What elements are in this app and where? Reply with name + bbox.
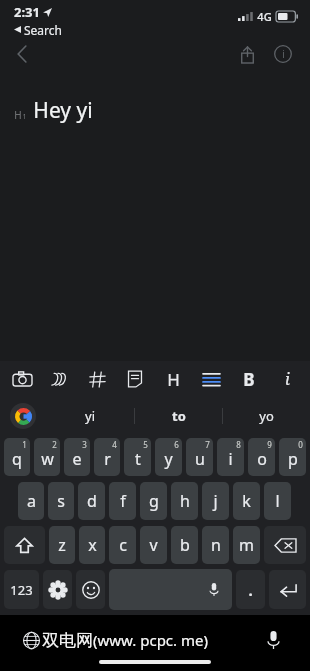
button[interactable]: List [192,361,230,397]
button[interactable]: Info [266,37,300,71]
staticText: i [228,448,233,470]
staticText: 123 [10,581,33,599]
button[interactable]: Period [236,570,265,609]
button[interactable]: Bold [230,361,268,397]
button[interactable]: Space [109,569,232,610]
staticText: 4G [257,9,272,24]
staticText: x [88,534,97,556]
staticText: 9 [267,439,272,450]
button[interactable]: d [78,482,105,520]
staticText: f [120,490,126,512]
button[interactable]: Shift [4,526,45,564]
staticText: u [195,448,205,470]
staticText: 2:31 [14,3,40,21]
staticText: h [180,490,190,512]
staticText: i [282,47,285,61]
button[interactable]: Settings [43,570,72,609]
button[interactable]: w [34,438,60,476]
button[interactable]: l [264,482,291,520]
button[interactable]: m [233,526,260,564]
button[interactable]: p [279,438,306,476]
staticText: yi [85,407,95,425]
staticText: a [27,490,36,512]
button[interactable]: Voice input [260,627,286,653]
staticText: z [58,534,66,556]
staticText: w [41,448,54,470]
staticText: s [57,490,65,512]
button[interactable]: c [109,526,136,564]
staticText: . [248,580,253,600]
staticText: Search [24,22,62,36]
staticText: B [243,368,255,391]
button[interactable]: t [124,438,151,476]
button[interactable]: Camera [4,361,41,397]
button[interactable]: Note [116,361,154,397]
button[interactable]: r [94,438,120,476]
button[interactable]: e [64,438,90,476]
button[interactable]: k [233,482,260,520]
button[interactable]: u [186,438,213,476]
staticText: 5 [143,439,148,450]
button[interactable]: h [171,482,198,520]
staticText: b [180,534,190,556]
button[interactable]: Google [10,403,36,429]
staticText: 4 [112,439,117,450]
button[interactable]: Table [78,361,116,397]
button[interactable]: g [140,482,167,520]
button[interactable]: Heading [154,361,192,397]
button[interactable]: Scribble [41,361,78,397]
button[interactable]: q [4,438,30,476]
staticText: o [257,448,267,470]
staticText: 3 [82,439,87,450]
staticText: 7 [205,439,210,450]
button[interactable]: a [18,482,44,520]
staticText: r [104,448,111,470]
staticText: 6 [174,439,179,450]
staticText: 双电网 [42,630,93,651]
staticText: e [72,448,82,470]
button[interactable]: s [48,482,74,520]
button[interactable]: yi [46,397,134,435]
staticText: c [119,534,127,556]
button[interactable]: Italic [268,361,306,397]
staticText: j [213,490,218,512]
staticText: d [87,490,97,512]
staticText: p [288,448,298,470]
staticText: H [14,108,22,122]
button[interactable]: b [171,526,198,564]
button[interactable]: Enter [269,570,306,609]
button[interactable]: to [135,397,222,435]
staticText: m [239,534,254,556]
button[interactable]: o [248,438,275,476]
button[interactable]: y [155,438,182,476]
staticText: g [149,490,159,512]
button[interactable]: z [49,526,75,564]
button[interactable]: x [79,526,105,564]
staticText: (www. pcpc. me) [93,630,208,650]
staticText: t [135,448,141,470]
staticText: q [12,448,22,470]
button[interactable]: Numbers [4,570,39,609]
staticText: 2 [52,439,57,450]
staticText: v [149,534,158,556]
button[interactable]: Backspace [264,526,306,564]
button[interactable]: f [109,482,136,520]
button[interactable]: Share [230,37,264,71]
button[interactable]: i [217,438,244,476]
button[interactable]: Back [6,37,40,71]
button[interactable]: j [202,482,229,520]
staticText: n [211,534,221,556]
staticText: 0 [298,439,303,450]
button[interactable]: yo [223,397,310,435]
staticText: 1 [22,112,27,122]
staticText: k [242,490,251,512]
staticText: to [172,407,186,425]
staticText: 8 [236,439,241,450]
button[interactable]: Emoji [76,570,105,609]
staticText: yo [259,407,274,425]
staticText: y [164,448,173,470]
button[interactable]: n [202,526,229,564]
button[interactable]: Language [20,629,42,651]
staticText: i [285,368,290,390]
button[interactable]: v [140,526,167,564]
